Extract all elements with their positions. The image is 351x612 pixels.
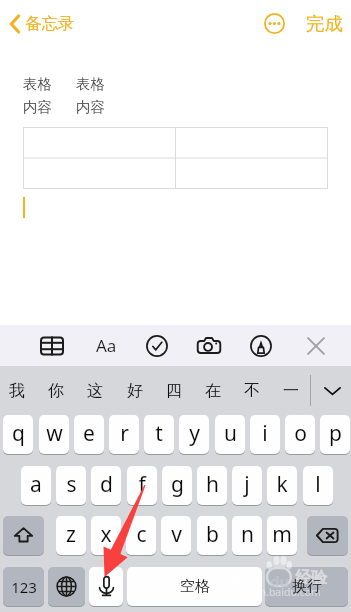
staticText: u — [224, 419, 237, 448]
staticText: v — [171, 520, 182, 549]
button[interactable]: e — [74, 415, 104, 454]
staticText: q — [12, 419, 25, 448]
button[interactable]: Expand candidates — [313, 366, 351, 415]
button[interactable]: Checklist — [139, 329, 175, 362]
staticText: a — [30, 470, 42, 499]
button[interactable]: n — [232, 516, 262, 555]
staticText: b — [206, 520, 219, 549]
staticText: du — [270, 571, 290, 591]
staticText: 在 — [205, 381, 221, 401]
button[interactable]: a — [21, 466, 51, 505]
button[interactable]: Close keyboard — [298, 329, 334, 362]
button[interactable]: p — [320, 415, 350, 454]
staticText: f — [138, 470, 146, 499]
staticText: c — [136, 520, 147, 549]
button[interactable]: b — [197, 516, 227, 555]
button[interactable]: 备忘录 — [4, 6, 82, 40]
staticText: h — [206, 470, 219, 499]
button[interactable]: w — [39, 415, 69, 454]
button[interactable]: v — [161, 516, 191, 555]
staticText: g — [171, 470, 184, 499]
button[interactable]: h — [197, 466, 227, 505]
button[interactable]: j — [232, 466, 262, 505]
staticText: j — [244, 470, 250, 499]
button[interactable]: q — [3, 415, 33, 454]
staticText: 123 — [11, 577, 37, 597]
button[interactable]: More options — [258, 7, 291, 40]
button[interactable]: x — [91, 516, 121, 555]
staticText: z — [66, 520, 76, 549]
staticText: l — [315, 470, 321, 499]
staticText: 四 — [166, 381, 182, 401]
button[interactable]: Switch keyboard — [48, 567, 85, 606]
button[interactable]: r — [109, 415, 139, 454]
staticText: 表格 — [23, 75, 52, 93]
staticText: 备忘录 — [25, 13, 75, 34]
staticText: y — [189, 419, 200, 448]
button[interactable]: 这 — [76, 366, 114, 415]
button[interactable]: z — [56, 516, 86, 555]
button[interactable]: s — [56, 466, 86, 505]
staticText: t — [155, 419, 163, 448]
button[interactable]: 四 — [155, 366, 193, 415]
button[interactable]: 一 — [272, 366, 310, 415]
button[interactable]: 空格 — [127, 567, 262, 606]
staticText: n — [241, 520, 254, 549]
staticText: e — [83, 419, 95, 448]
button[interactable]: 换行 — [265, 567, 348, 606]
staticText: Aa — [96, 334, 117, 357]
staticText: r — [120, 419, 129, 448]
staticText: 内容 — [23, 98, 52, 116]
staticText: 内容 — [76, 98, 105, 116]
staticText: 我 — [9, 381, 25, 401]
button[interactable]: Camera — [191, 329, 227, 362]
button[interactable]: g — [162, 466, 192, 505]
staticText: 表格 — [76, 75, 105, 93]
button[interactable]: Dictation — [89, 567, 123, 606]
staticText: k — [276, 470, 288, 499]
button[interactable]: m — [267, 516, 297, 555]
staticText: d — [100, 470, 113, 499]
button[interactable]: 我 — [0, 366, 36, 415]
button[interactable]: Shift — [3, 516, 44, 555]
button[interactable]: 在 — [194, 366, 232, 415]
staticText: i — [262, 419, 268, 448]
button[interactable]: k — [267, 466, 297, 505]
staticText: 换行 — [292, 577, 322, 596]
button[interactable]: Markup — [243, 329, 279, 362]
button[interactable]: 好 — [116, 366, 154, 415]
button[interactable]: Delete — [307, 516, 348, 555]
button[interactable]: 不 — [233, 366, 271, 415]
staticText: p — [329, 419, 342, 448]
staticText: m — [272, 520, 292, 549]
staticText: 不 — [244, 381, 260, 401]
button[interactable]: f — [127, 466, 157, 505]
staticText: x — [100, 520, 112, 549]
staticText: 这 — [87, 381, 103, 401]
button[interactable]: y — [179, 415, 209, 454]
button[interactable]: d — [91, 466, 121, 505]
staticText: 你 — [48, 381, 64, 401]
button[interactable]: i — [250, 415, 280, 454]
staticText: w — [46, 419, 63, 448]
button[interactable]: Aa — [88, 329, 124, 362]
staticText: jingyan.baidu.com — [230, 585, 321, 599]
staticText: 经验 — [295, 568, 327, 588]
staticText: 空格 — [180, 577, 210, 596]
button[interactable] — [265, 567, 348, 606]
button[interactable]: u — [215, 415, 245, 454]
button[interactable]: 你 — [37, 366, 75, 415]
staticText: 完成 — [306, 12, 343, 35]
button[interactable]: l — [303, 466, 333, 505]
staticText: 一 — [283, 381, 299, 401]
button[interactable]: o — [285, 415, 315, 454]
button[interactable]: c — [126, 516, 156, 555]
button[interactable]: Insert table — [34, 329, 70, 362]
button[interactable]: 123 — [3, 567, 44, 606]
button[interactable]: 完成 — [300, 6, 348, 40]
staticText: 好 — [127, 381, 143, 401]
staticText: o — [294, 419, 307, 448]
button[interactable]: t — [144, 415, 174, 454]
staticText: s — [66, 470, 77, 499]
